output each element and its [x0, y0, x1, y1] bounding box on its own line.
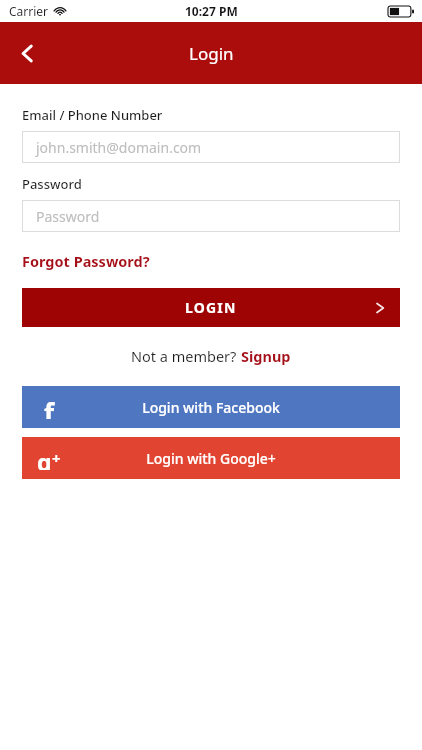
button[interactable]: Forgot Password?	[22, 251, 150, 271]
staticText: Login with Google+	[146, 449, 276, 468]
button[interactable]: Login with Facebook	[22, 386, 400, 428]
staticText: Carrier	[9, 3, 49, 19]
staticText: LOGIN	[185, 298, 237, 317]
staticText: Not a member?	[131, 346, 241, 366]
staticText: Login	[189, 42, 234, 65]
staticText: Forgot Password?	[22, 251, 150, 271]
staticText: Email / Phone Number	[22, 106, 163, 124]
button[interactable]: LOGIN	[22, 288, 400, 327]
staticText: Password	[22, 175, 82, 193]
button[interactable]: Login with Google+	[22, 437, 400, 479]
button[interactable]: Back	[6, 32, 48, 74]
staticText: f	[44, 395, 55, 419]
button[interactable]: Signup	[241, 346, 291, 366]
staticText: Password	[36, 207, 100, 226]
staticText: Login with Facebook	[142, 398, 280, 417]
staticText: john.smith@domain.com	[36, 138, 202, 157]
button[interactable]: Password	[22, 200, 400, 232]
staticText: +	[52, 448, 61, 468]
staticText: 10:27 PM	[185, 3, 238, 19]
button[interactable]: john.smith@domain.com	[22, 131, 400, 163]
staticText: g	[37, 446, 52, 470]
staticText: Signup	[241, 346, 291, 366]
